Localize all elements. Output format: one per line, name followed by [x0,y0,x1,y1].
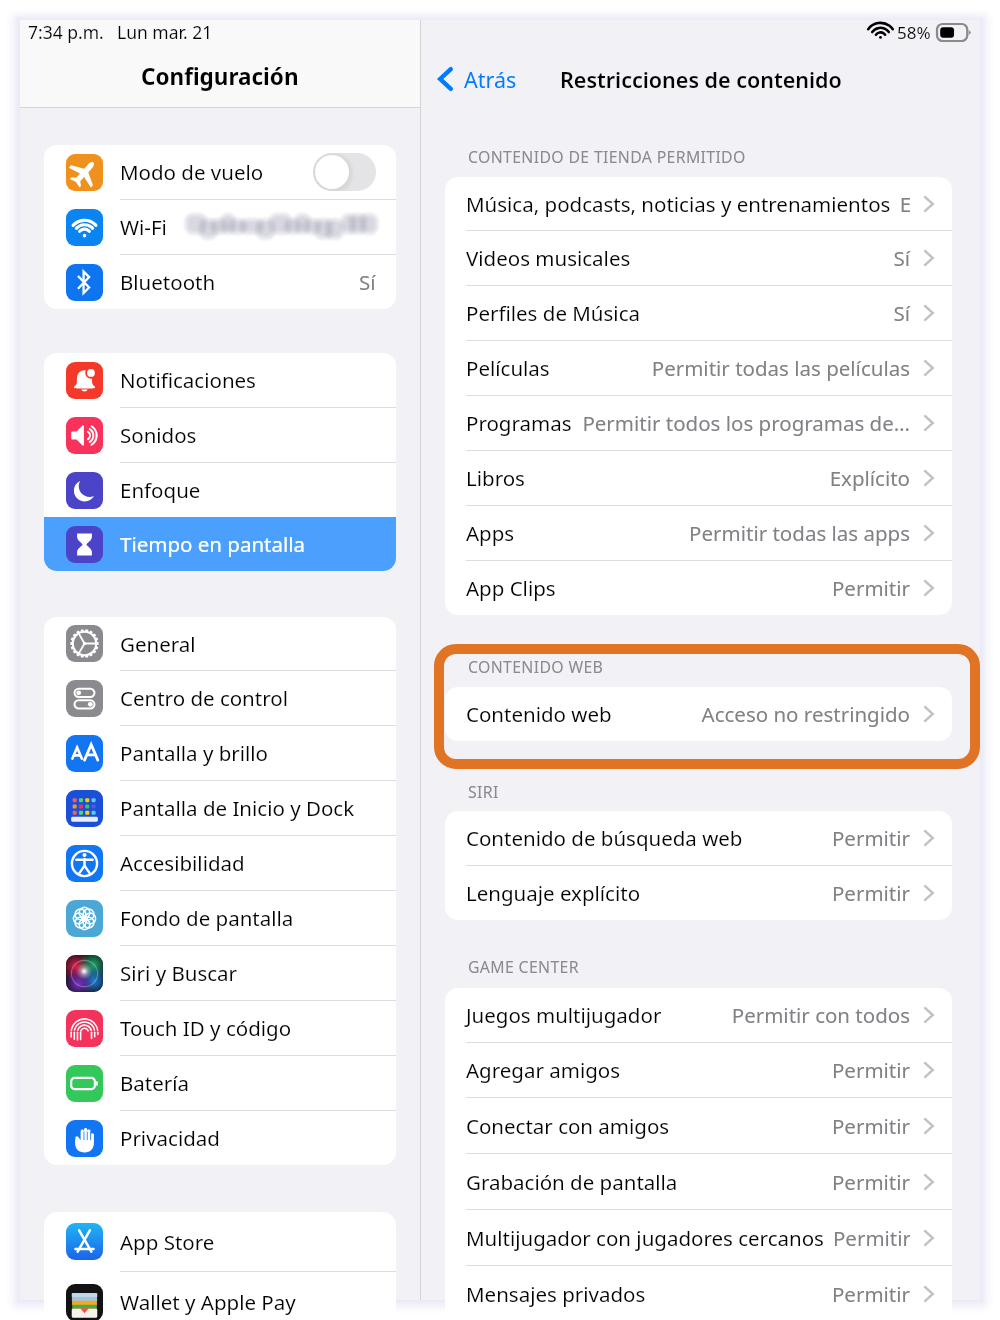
button[interactable]: Videos musicales [445,231,952,285]
button[interactable]: Multijugador con jugadores cercanos [445,1210,952,1265]
button[interactable]: Modo de vuelo [44,145,396,199]
button[interactable]: Bluetooth [44,255,396,309]
staticText: Configuración [141,61,299,92]
button[interactable]: Tiempo en pantalla [44,517,396,571]
staticText: SIRI [468,781,499,803]
staticText: Películas [466,354,550,382]
button[interactable]: Sonidos [44,408,396,462]
staticText: Programas [466,409,572,437]
staticText: Libros [466,464,525,492]
staticText: Sí [359,268,376,296]
button[interactable]: Atrás [438,62,517,96]
staticText: Permitir [629,1056,910,1084]
staticText: Batería [120,1069,190,1097]
staticText: Centro de control [120,684,288,712]
staticText: Sí [639,244,910,272]
button[interactable]: Touch ID y código [44,1001,396,1055]
staticText: 58% [897,21,931,44]
button[interactable]: Películas [445,341,952,395]
staticText: Fondo de pantalla [120,904,294,932]
staticText: Perfiles de Música [466,299,640,327]
button[interactable]: Batería [44,1056,396,1110]
button[interactable]: Fondo de pantalla [44,891,396,945]
staticText: App Store [120,1228,215,1256]
button[interactable]: Pantalla y brillo [44,726,396,780]
staticText: Permitir [832,1224,910,1252]
staticText: Tiempo en pantalla [120,530,306,558]
button[interactable]: App Clips [445,561,952,615]
staticText: Permitir [649,879,910,907]
staticText: Enfoque [120,476,201,504]
button[interactable]: Centro de control [44,671,396,725]
staticText: Grabación de pantalla [466,1168,678,1196]
button[interactable]: Accesibilidad [44,836,396,890]
staticText: Contenido web [466,700,612,728]
staticText: Notificaciones [120,366,256,394]
staticText: Juegos multijugador [466,1001,662,1029]
button[interactable]: Modo de vuelo [313,153,376,191]
button[interactable]: Apps [445,506,952,560]
staticText: Pantalla y brillo [120,739,269,767]
staticText: CONTENIDO WEB [468,656,604,678]
staticText: Permitir [678,1112,910,1140]
button[interactable]: General [44,617,396,670]
button[interactable]: Pantalla de Inicio y Dock [44,781,396,835]
staticText: Apps [466,519,515,547]
staticText: Acceso no restringido [620,700,910,728]
staticText: App Clips [466,574,556,602]
button[interactable]: Música, podcasts, noticias y entrenamien… [445,177,952,230]
button[interactable]: Wi-Fi [44,200,396,254]
staticText: CONTENIDO DE TIENDA PERMITIDO [468,146,746,168]
staticText: Conectar con amigos [466,1112,670,1140]
staticText: Lenguaje explícito [466,879,641,907]
staticText: Sí [648,299,910,327]
button[interactable]: Notificaciones [44,353,396,407]
button[interactable]: Lenguaje explícito [445,866,952,920]
button[interactable]: Libros [445,451,952,505]
button[interactable]: Wallet y Apple Pay [44,1272,396,1320]
staticText: Explícito [899,190,910,218]
staticText: Permitir todas las apps [523,519,910,547]
staticText: Privacidad [120,1124,220,1152]
button[interactable]: Perfiles de Música [445,286,952,340]
button[interactable]: Enfoque [44,463,396,517]
staticText: Música, podcasts, noticias y entrenamien… [466,190,891,218]
staticText: Permitir [686,1168,910,1196]
staticText: 7:34 p.m. [28,20,104,44]
staticText: Permitir [751,824,910,852]
staticText: Contenido de búsqueda web [466,824,743,852]
staticText: Wallet y Apple Pay [120,1288,296,1316]
button[interactable]: Privacidad [44,1111,396,1165]
staticText: Touch ID y código [120,1014,292,1042]
staticText: Explícito [533,464,910,492]
staticText: Wi-Fi [120,213,167,241]
staticText: General [120,630,196,658]
button[interactable]: Programas [445,396,952,450]
staticText: Multijugador con jugadores cercanos [466,1224,824,1252]
staticText: Videos musicales [466,244,631,272]
staticText: Permitir todas las películas [558,354,910,382]
staticText: Accesibilidad [120,849,245,877]
staticText: Sonidos [120,421,197,449]
staticText: Lun mar. 21 [117,20,213,44]
button[interactable]: App Store [44,1212,396,1271]
button[interactable]: Siri y Buscar [44,946,396,1000]
staticText: Siri y Buscar [120,959,238,987]
staticText: Permitir [564,574,910,602]
button[interactable]: Contenido de búsqueda web [445,811,952,865]
staticText: Agregar amigos [466,1056,621,1084]
staticText: Pantalla de Inicio y Dock [120,794,355,822]
staticText: Restricciones de contenido [560,65,842,94]
staticText: Mensajes privados [466,1280,646,1308]
staticText: Permitir todos los programas de… [580,409,910,437]
button[interactable]: Contenido web [445,687,952,741]
button[interactable]: Agregar amigos [445,1043,952,1097]
button[interactable]: Conectar con amigos [445,1098,952,1153]
button[interactable]: Grabación de pantalla [445,1154,952,1209]
staticText: Permitir con todos [670,1001,910,1029]
staticText: Bluetooth [120,268,216,296]
staticText: Modo de vuelo [120,158,264,186]
button[interactable]: Mensajes privados [445,1266,952,1320]
staticText: GAME CENTER [468,956,579,978]
button[interactable]: Juegos multijugador [445,988,952,1042]
